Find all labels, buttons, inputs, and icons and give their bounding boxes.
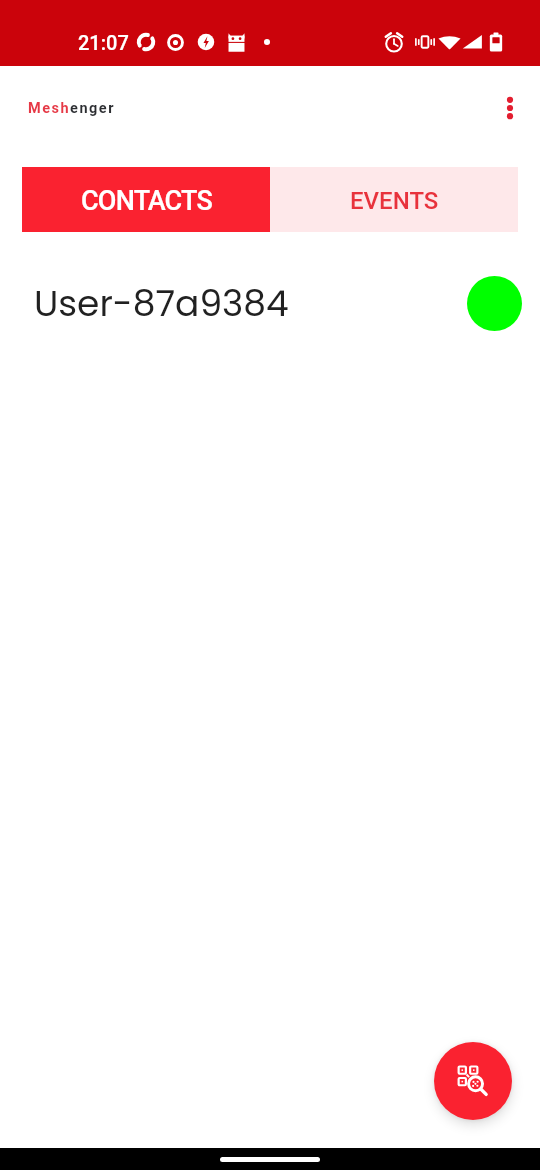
staticText: Meshenger (28, 100, 115, 117)
button[interactable]: Scan QR code (434, 1042, 512, 1120)
staticText: CONTACTS (81, 185, 212, 217)
button[interactable]: More options (486, 84, 534, 132)
staticText: EVENTS (350, 187, 439, 215)
button[interactable]: EVENTS (270, 167, 518, 232)
button[interactable]: CONTACTS (22, 167, 270, 232)
staticText: 21:07 (78, 31, 129, 54)
button[interactable]: User-87a9384 (0, 275, 540, 331)
staticText: User-87a9384 (34, 278, 289, 328)
